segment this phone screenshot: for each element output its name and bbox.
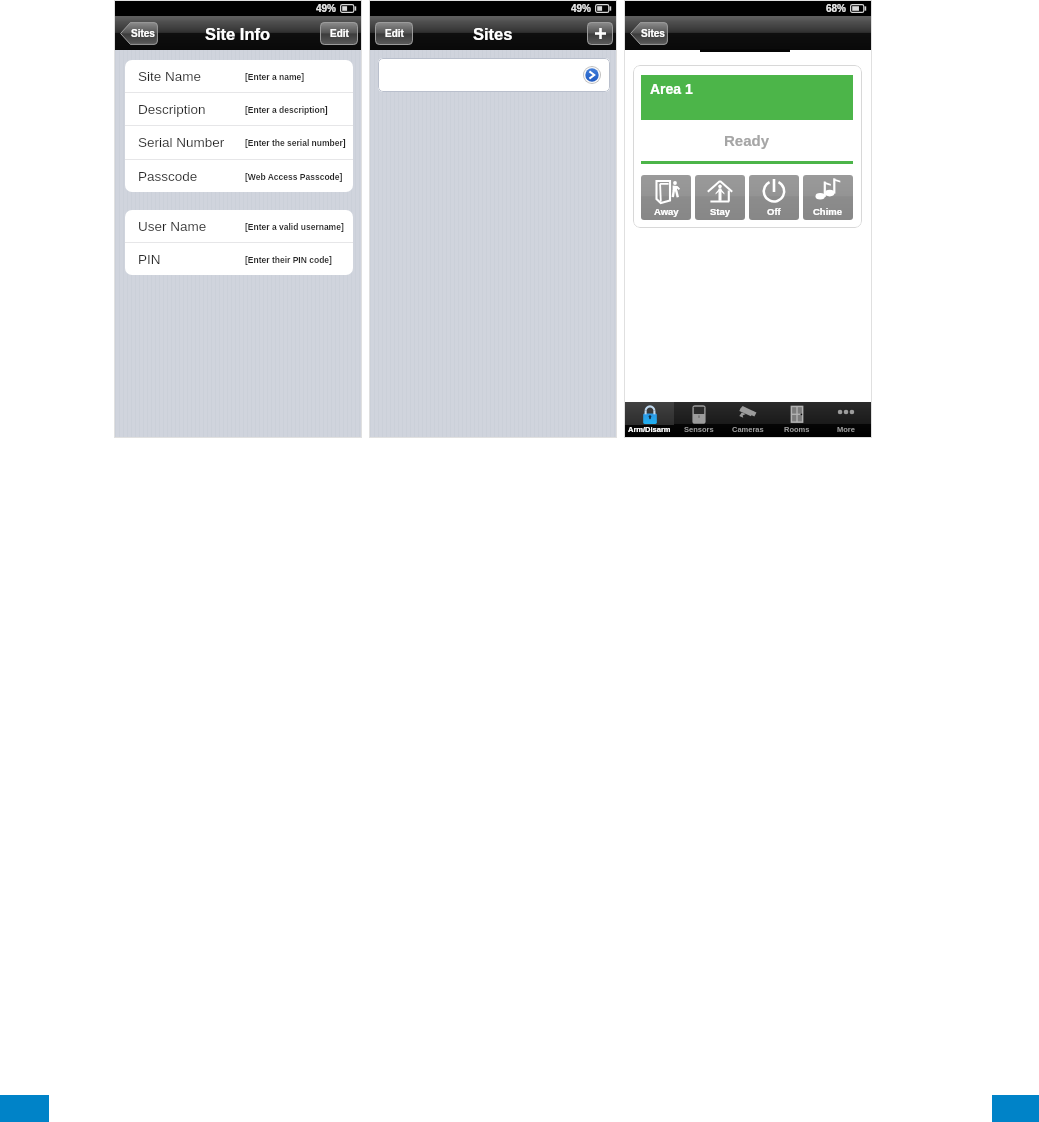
button[interactable]: Sensors — [674, 402, 723, 437]
button[interactable]: Open site — [378, 58, 610, 92]
button[interactable]: Site Name — [125, 60, 353, 92]
button[interactable]: Chime — [803, 175, 853, 220]
button[interactable]: Edit — [375, 22, 413, 45]
button[interactable]: Rooms — [772, 402, 821, 437]
staticText: PIN — [138, 252, 161, 267]
button[interactable]: Description — [125, 93, 353, 125]
button[interactable]: Away — [641, 175, 691, 220]
staticText: 49% — [571, 3, 592, 14]
staticText: Ready — [724, 132, 770, 149]
button[interactable]: Cameras — [723, 402, 772, 437]
staticText: Sensors — [684, 425, 714, 433]
button[interactable]: Open site — [583, 66, 601, 84]
staticText: Sites — [131, 28, 155, 39]
staticText: Edit — [385, 28, 404, 39]
button[interactable]: Arm/Disarm — [625, 402, 674, 437]
staticText: Arm/Disarm — [628, 425, 671, 433]
button[interactable]: Serial Number — [125, 126, 353, 159]
staticText: [Enter their PIN code] — [245, 255, 332, 264]
staticText: Rooms — [784, 425, 810, 433]
button[interactable]: PIN — [125, 243, 353, 275]
staticText: [Enter a description] — [245, 105, 328, 114]
button[interactable]: Sites — [120, 22, 158, 45]
staticText: Sites — [641, 28, 665, 39]
button[interactable]: Off — [749, 175, 799, 220]
staticText: Site Name — [138, 69, 202, 84]
staticText: Site Info — [205, 25, 271, 43]
button[interactable]: More — [821, 402, 870, 437]
button[interactable]: Sites — [630, 22, 668, 45]
staticText: [Enter the serial number] — [245, 138, 346, 147]
staticText: 68% — [826, 3, 847, 14]
button[interactable] — [587, 22, 613, 45]
staticText: Sites — [473, 25, 513, 43]
button[interactable]: Passcode — [125, 160, 353, 192]
staticText: Description — [138, 102, 206, 117]
staticText: Off — [767, 206, 781, 217]
staticText: Passcode — [138, 169, 198, 184]
staticText: Away — [654, 206, 679, 217]
staticText: [Web Access Passcode] — [245, 172, 343, 181]
button[interactable]: Edit — [320, 22, 358, 45]
staticText: Area 1 — [650, 81, 693, 97]
staticText: [Enter a valid username] — [245, 222, 344, 231]
staticText: Stay — [710, 206, 731, 217]
staticText: Edit — [330, 28, 349, 39]
button[interactable]: User Name — [125, 210, 353, 242]
staticText: 49% — [316, 3, 337, 14]
staticText: User Name — [138, 219, 207, 234]
button[interactable]: Stay — [695, 175, 745, 220]
staticText: More — [837, 425, 855, 433]
staticText: [Enter a name] — [245, 72, 305, 81]
staticText: Cameras — [732, 425, 764, 433]
staticText: Chime — [813, 206, 843, 217]
staticText: Serial Number — [138, 135, 225, 150]
